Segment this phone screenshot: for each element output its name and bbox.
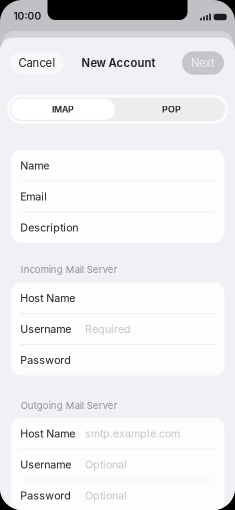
- button[interactable]: Description: [11, 212, 224, 243]
- staticText: 10:00: [13, 10, 41, 22]
- button[interactable]: Password: [11, 480, 224, 510]
- staticText: Next: [191, 56, 215, 70]
- button[interactable]: Host Name: [11, 418, 224, 449]
- staticText: Name: [20, 159, 49, 172]
- staticText: Password: [20, 353, 71, 366]
- button[interactable]: Password: [11, 344, 224, 375]
- staticText: Username: [20, 322, 71, 335]
- staticText: Description: [20, 221, 78, 234]
- staticText: Cancel: [18, 56, 55, 70]
- staticText: Host Name: [20, 291, 75, 304]
- staticText: Host Name: [20, 427, 75, 440]
- staticText: Incoming Mail Server: [21, 264, 118, 275]
- button[interactable]: Name: [11, 150, 224, 181]
- button[interactable]: Email: [11, 181, 224, 212]
- staticText: Optional: [85, 458, 127, 471]
- button[interactable]: Username: [11, 313, 224, 344]
- staticText: IMAP: [52, 104, 74, 115]
- button[interactable]: Cancel: [10, 51, 64, 74]
- staticText: Password: [20, 489, 71, 502]
- staticText: smtp.example.com: [85, 427, 180, 440]
- button[interactable]: IMAP: [11, 99, 115, 120]
- staticText: New Account: [81, 56, 155, 70]
- button[interactable]: Next: [182, 51, 224, 75]
- button[interactable]: Username: [11, 449, 224, 480]
- staticText: Optional: [85, 489, 127, 502]
- staticText: Outgoing Mail Server: [21, 400, 118, 411]
- button[interactable]: Host Name: [11, 282, 224, 313]
- staticText: POP: [162, 104, 181, 115]
- button[interactable]: POP: [119, 99, 223, 120]
- staticText: Required: [85, 322, 131, 335]
- staticText: Email: [20, 190, 47, 203]
- staticText: Username: [20, 458, 71, 471]
